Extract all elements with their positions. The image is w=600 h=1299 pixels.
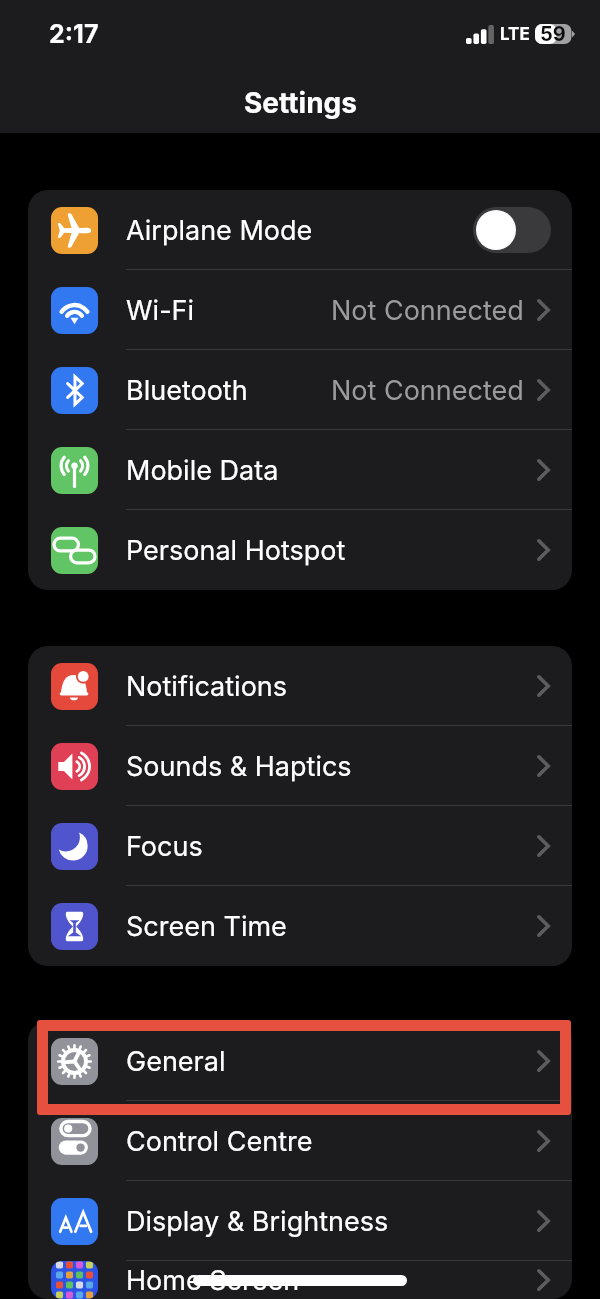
- staticText: Control Centre: [126, 1125, 313, 1158]
- button[interactable]: Home Screen: [28, 1261, 572, 1299]
- staticText: Screen Time: [126, 910, 287, 943]
- button[interactable]: Sounds & Haptics: [28, 726, 572, 806]
- staticText: 59: [540, 22, 566, 46]
- staticText: Notifications: [126, 670, 288, 703]
- button[interactable]: Notifications: [28, 646, 572, 726]
- staticText: General: [126, 1045, 226, 1078]
- button[interactable]: Personal Hotspot: [28, 510, 572, 590]
- button[interactable]: Focus: [28, 806, 572, 886]
- staticText: Bluetooth: [126, 374, 248, 407]
- button[interactable]: Toggle Airplane Mode: [473, 207, 551, 253]
- staticText: Sounds & Haptics: [126, 750, 352, 783]
- staticText: Not Connected: [331, 374, 524, 407]
- staticText: Display & Brightness: [126, 1205, 389, 1238]
- button[interactable]: Control Centre: [28, 1101, 572, 1181]
- button[interactable]: Wi-Fi: [28, 270, 572, 350]
- staticText: Mobile Data: [126, 454, 279, 487]
- staticText: Home Screen: [126, 1264, 300, 1297]
- button[interactable]: General: [28, 1021, 572, 1101]
- button[interactable]: Screen Time: [28, 886, 572, 966]
- staticText: Settings: [244, 86, 357, 120]
- staticText: 2:17: [49, 19, 99, 49]
- button[interactable]: Mobile Data: [28, 430, 572, 510]
- staticText: Wi-Fi: [126, 294, 195, 327]
- staticText: Airplane Mode: [126, 214, 313, 247]
- staticText: LTE: [500, 24, 530, 45]
- button[interactable]: Bluetooth: [28, 350, 572, 430]
- button[interactable]: Display & Brightness: [28, 1181, 572, 1261]
- staticText: Personal Hotspot: [126, 534, 346, 567]
- button[interactable]: Airplane Mode: [28, 190, 572, 270]
- staticText: Focus: [126, 830, 203, 863]
- staticText: Not Connected: [331, 294, 524, 327]
